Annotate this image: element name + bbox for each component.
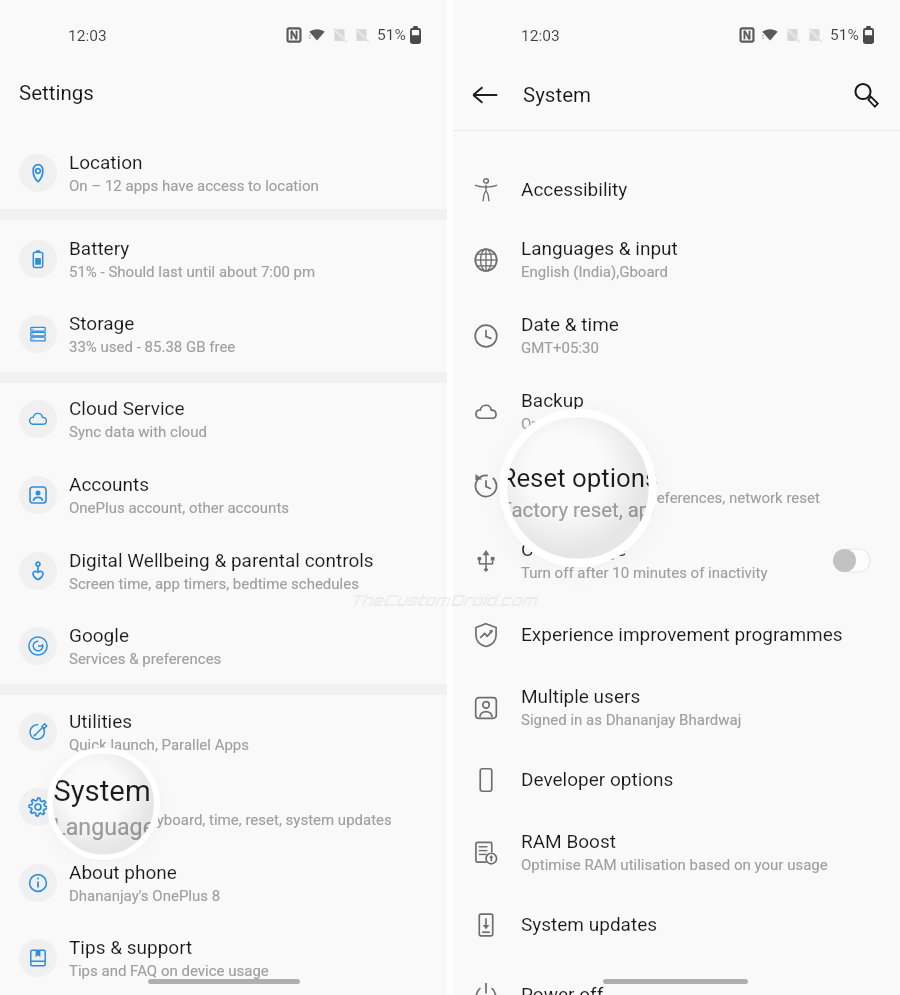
staticText: Date & time [521,313,619,335]
staticText: System [523,83,592,107]
button[interactable]: System updates [453,898,900,950]
staticText: 12:03 [521,27,560,45]
button[interactable]: System [0,771,447,843]
button[interactable]: Accessibility [453,163,900,215]
staticText: Google [69,624,129,646]
button[interactable]: Power off [453,968,900,995]
staticText: Factory reset, app preferences, network … [521,489,820,507]
button[interactable]: Location [0,137,447,209]
button[interactable]: Multiple users [453,671,900,743]
button[interactable]: Languages & input [453,223,900,295]
button[interactable]: Toggle [833,549,870,572]
staticText: Accounts [69,473,150,495]
button[interactable]: OTG storage [499,545,623,567]
staticText: Backup [521,389,584,411]
staticText: Reset options [521,463,638,485]
button[interactable]: System [47,751,121,861]
staticText: GMT+05:30 [521,339,599,357]
staticText: 12:03 [68,27,107,45]
staticText: On [500,409,526,421]
button[interactable]: Reset options [499,443,623,541]
button[interactable]: Digital Wellbeing & parental controls [0,535,447,607]
staticText: OTG storage [521,538,627,560]
staticText: Services & preferences [69,650,222,668]
staticText: RAM Boost [521,830,616,852]
staticText: System [53,773,121,807]
staticText: Quick launch, Parallel Apps [69,736,250,754]
staticText: Reset options [500,462,623,492]
button[interactable]: Cloud Service [0,383,447,455]
staticText: Sync data with cloud [69,423,207,441]
button[interactable]: OTG storage [453,524,900,596]
staticText: Tips & support [69,936,193,958]
staticText: Optimise RAM utilisation based on your u… [521,856,828,874]
staticText: On – 12 apps have access to location [69,177,319,195]
button[interactable]: Date & time [453,299,900,371]
staticText: System [69,785,133,807]
button[interactable]: RAM Boost [453,816,900,888]
staticText: English (India),Gboard [521,263,668,281]
staticText: 33% used - 85.38 GB free [69,338,236,356]
button[interactable]: Tips & support [0,922,447,994]
button[interactable]: About phone [0,847,447,919]
staticText: 51% - Should last until about 7:00 pm [69,263,316,281]
staticText: Factory reset, app preferences, network … [500,497,623,522]
staticText: 51% [377,26,406,44]
button[interactable]: Back [467,77,503,113]
staticText: Multiple users [521,685,641,707]
staticText: Turn off after 10 minutes of inactivity [521,564,768,582]
button[interactable]: Utilities [0,696,447,768]
staticText: Developer options [521,768,674,790]
staticText: Languages & input [521,237,678,259]
staticText: Settings [19,81,94,105]
staticText: OnePlus account, other accounts [69,499,290,517]
button[interactable]: Backup [499,409,623,440]
button[interactable]: Experience improvement programmes [453,608,900,660]
button[interactable]: Storage [0,298,447,370]
staticText: Battery [69,237,130,259]
staticText: Digital Wellbeing & parental controls [69,549,374,571]
button[interactable]: Google [0,610,447,682]
button[interactable]: Backup [453,375,900,447]
staticText: About phone [69,861,177,883]
staticText: Cloud Service [69,397,185,419]
staticText: Dhananjay's OnePlus 8 [69,887,221,905]
staticText: Experience improvement programmes [521,623,843,645]
staticText: On [521,415,540,433]
staticText: 51% [830,26,859,44]
staticText: Language, keyboard, time, reset, system … [69,811,392,829]
staticText: Accessibility [521,178,628,200]
staticText: Utilities [69,710,133,732]
staticText: System updates [521,913,658,935]
staticText: TheCustomDroid.com [349,590,536,609]
staticText: Storage [69,312,135,334]
staticText: Tips and FAQ on device usage [69,962,269,980]
staticText: Signed in as Dhananjay Bhardwaj [521,711,742,729]
staticText: Screen time, app timers, bedtime schedul… [69,575,359,593]
button[interactable]: Developer options [453,753,900,805]
button[interactable]: Battery [0,223,447,295]
staticText: Language, keyboard, time, reset, system … [53,813,121,841]
button[interactable]: Reset options [453,449,900,521]
button[interactable]: Search [844,73,888,117]
staticText: Location [69,151,143,173]
staticText: Power off [521,983,604,995]
button[interactable]: Accounts [0,459,447,531]
